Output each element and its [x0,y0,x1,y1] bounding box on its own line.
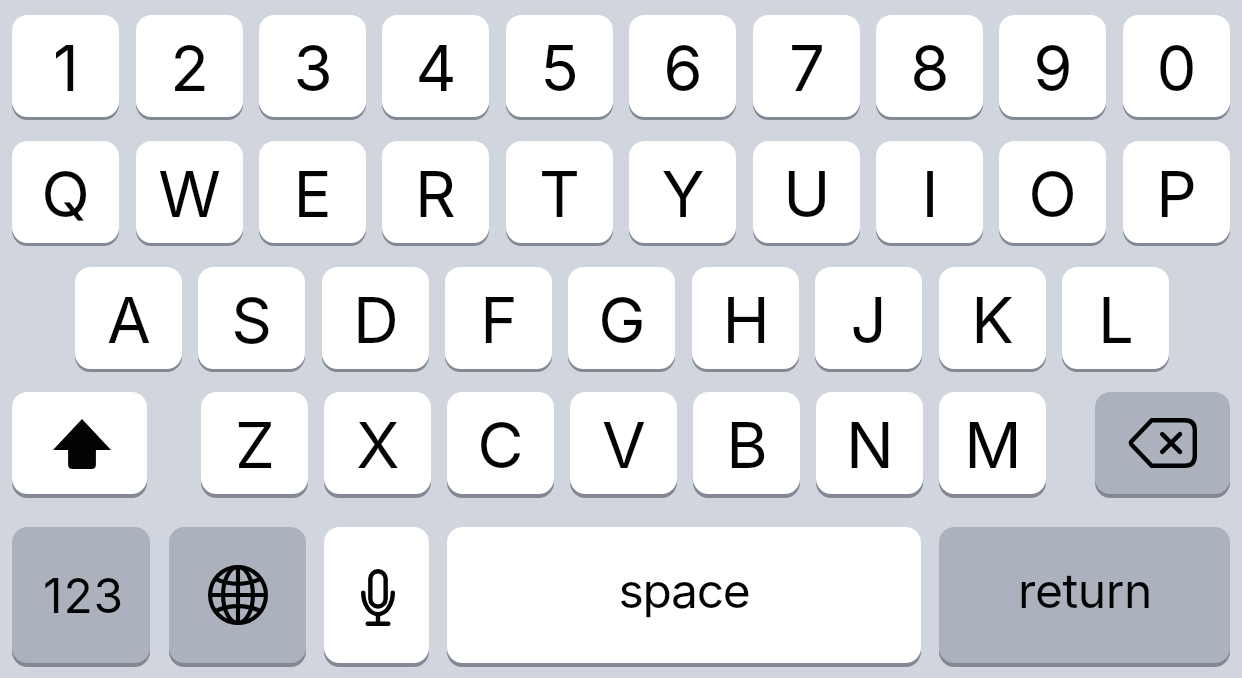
button[interactable]: T [506,141,613,243]
staticText: space [618,561,750,619]
staticText: A [107,281,151,358]
button[interactable]: 1 [12,15,119,117]
staticText: G [598,281,646,358]
button[interactable]: Q [12,141,119,243]
staticText: T [539,155,580,232]
button[interactable]: 123 [12,527,150,663]
button[interactable]: V [570,392,677,494]
button[interactable]: 4 [382,15,489,117]
button[interactable]: space [447,527,921,663]
staticText: J [850,281,887,358]
staticText: D [353,281,399,358]
button[interactable]: R [382,141,489,243]
staticText: Z [235,406,275,483]
button[interactable]: 3 [259,15,366,117]
button[interactable]: 5 [506,15,613,117]
button[interactable]: K [939,267,1046,369]
button[interactable]: W [136,141,243,243]
staticText: R [415,155,456,232]
staticText: 3 [293,29,333,106]
button[interactable]: P [1123,141,1230,243]
staticText: 5 [540,29,579,106]
button[interactable]: G [568,267,675,369]
button[interactable]: J [815,267,922,369]
staticText: S [231,281,272,358]
button[interactable]: 0 [1123,15,1230,117]
staticText: N [846,406,894,483]
button[interactable]: A [75,267,182,369]
button[interactable]: 8 [876,15,983,117]
staticText: P [1156,155,1197,232]
staticText: 6 [663,29,703,106]
button[interactable]: F [445,267,552,369]
staticText: 2 [170,29,209,106]
button[interactable]: O [999,141,1106,243]
button[interactable]: X [324,392,431,494]
button[interactable]: C [447,392,554,494]
button[interactable]: B [693,392,800,494]
staticText: U [783,155,831,232]
staticText: O [1028,155,1077,232]
staticText: I [921,155,939,232]
button[interactable]: 7 [753,15,860,117]
staticText: 9 [1033,29,1073,106]
staticText: 1 [53,29,79,106]
staticText: return [1018,561,1152,619]
staticText: W [158,155,221,232]
staticText: 7 [789,29,825,106]
staticText: 123 [43,566,124,624]
button[interactable]: U [753,141,860,243]
button[interactable]: Z [201,392,308,494]
staticText: V [602,406,646,483]
staticText: B [726,406,768,483]
button[interactable]: Shift [12,392,147,494]
staticText: E [293,155,332,232]
button[interactable]: H [692,267,799,369]
staticText: M [964,406,1022,483]
button[interactable]: 9 [999,15,1106,117]
staticText: H [722,281,770,358]
button[interactable]: L [1062,267,1169,369]
button[interactable]: I [876,141,983,243]
button[interactable]: S [198,267,305,369]
staticText: X [356,406,400,483]
staticText: 0 [1156,29,1197,106]
staticText: C [477,406,524,483]
button[interactable]: D [322,267,429,369]
staticText: Q [41,155,90,232]
button[interactable]: E [259,141,366,243]
staticText: F [480,281,518,358]
button[interactable]: Y [629,141,736,243]
button[interactable]: 2 [136,15,243,117]
staticText: 8 [910,29,950,106]
button[interactable]: N [816,392,923,494]
button[interactable]: return [939,527,1230,663]
button[interactable]: 6 [629,15,736,117]
staticText: K [971,281,1014,358]
button[interactable]: Dictation [324,527,429,663]
staticText: L [1098,281,1134,358]
staticText: Y [661,155,705,232]
button[interactable]: Delete [1095,392,1230,494]
staticText: 4 [415,29,457,106]
button[interactable]: Next keyboard [169,527,306,663]
button[interactable]: M [939,392,1046,494]
